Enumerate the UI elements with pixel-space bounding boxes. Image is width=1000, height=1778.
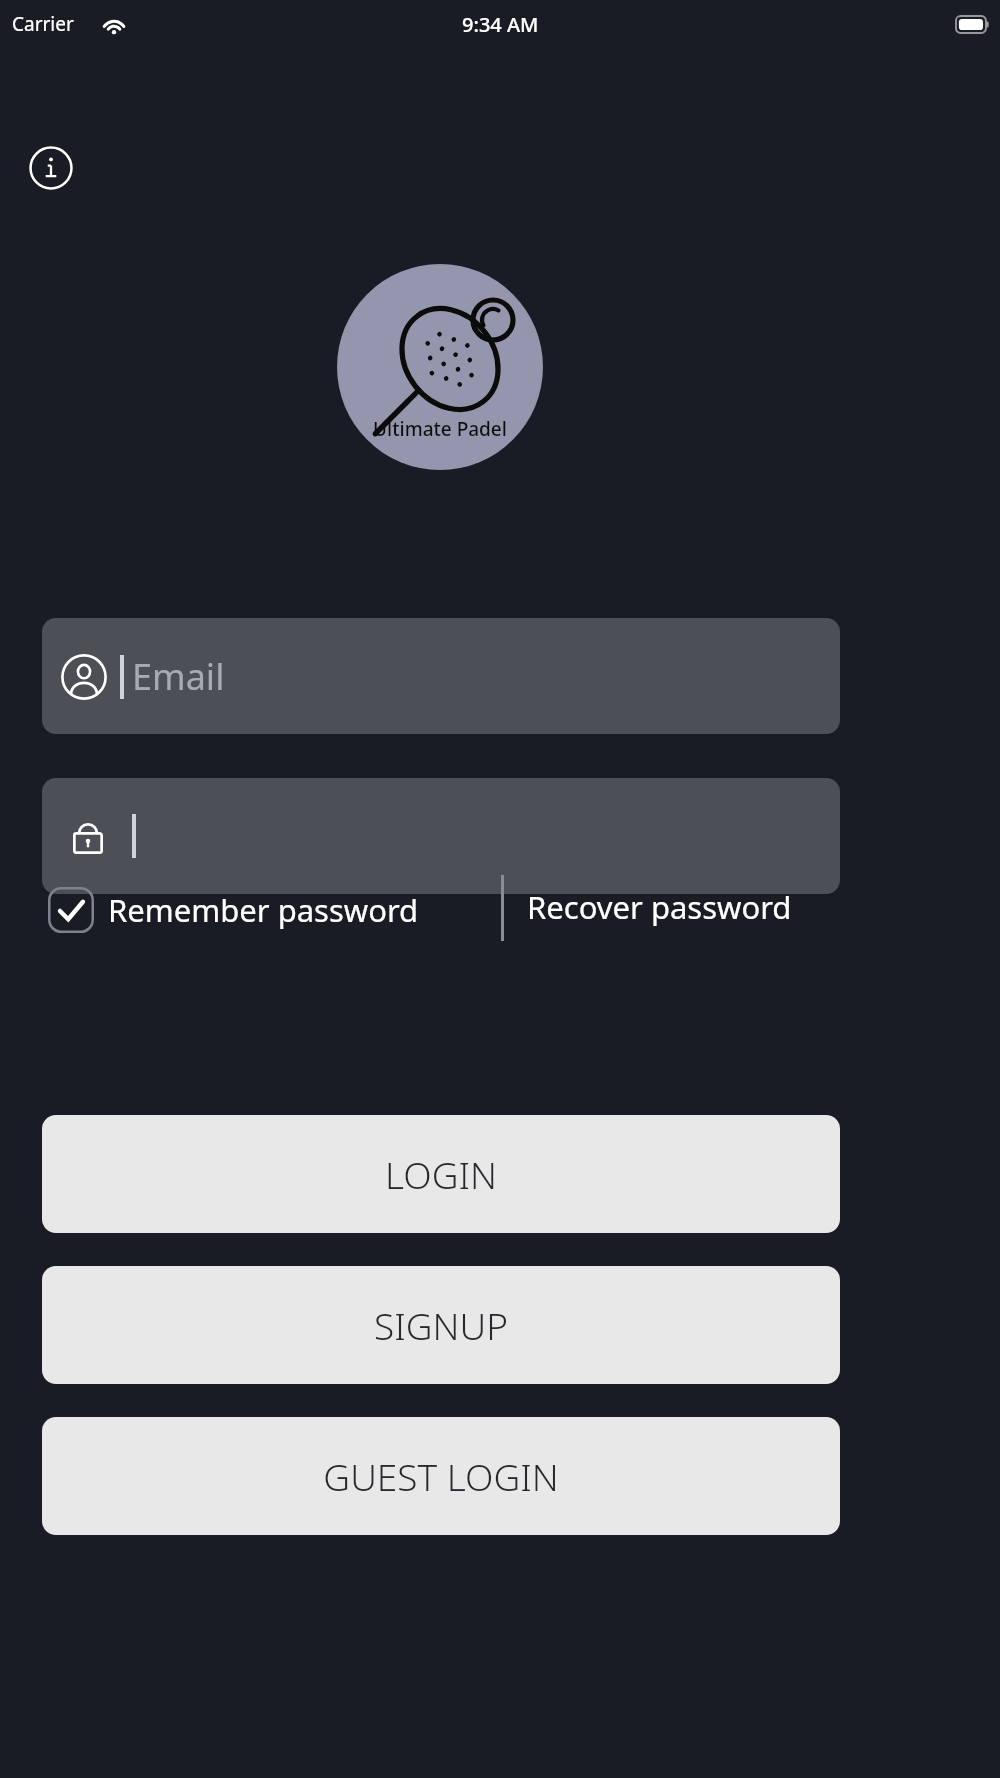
button[interactable]: Email [42,618,840,734]
button[interactable]: SIGNUP [42,1266,840,1384]
button[interactable]: Remember password [48,887,419,933]
staticText: Email [132,652,225,701]
button[interactable]: LOGIN [42,1115,840,1233]
staticText: GUEST LOGIN [323,1451,559,1501]
button[interactable]: Recover password [527,877,792,937]
button[interactable]: Information [26,143,76,193]
button[interactable]: GUEST LOGIN [42,1417,840,1535]
staticText: Carrier [12,11,74,37]
button[interactable]: Password [42,778,840,894]
staticText: Recover password [527,886,792,928]
staticText: SIGNUP [374,1300,508,1350]
staticText: 9:34 AM [462,11,539,38]
staticText: Ultimate Padel [373,416,507,442]
staticText: LOGIN [385,1149,497,1199]
staticText: Remember password [108,889,419,931]
